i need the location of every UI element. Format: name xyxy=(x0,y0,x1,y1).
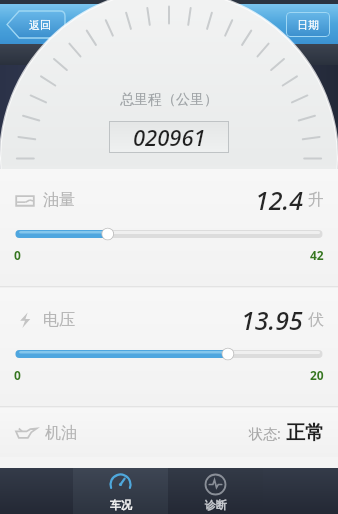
button[interactable]: 车况 xyxy=(73,468,168,514)
staticText: 伏 xyxy=(308,310,324,330)
staticText: 正常 xyxy=(286,421,324,445)
staticText: 20 xyxy=(310,367,324,383)
staticText: 车况 xyxy=(110,498,132,512)
staticText: 诊断 xyxy=(205,498,227,512)
staticText: 13.95 xyxy=(241,303,303,337)
staticText: 0 xyxy=(14,247,21,263)
staticText: 总里程（公里） xyxy=(120,91,218,109)
staticText: 返回 xyxy=(29,18,51,32)
staticText: 状态: xyxy=(249,424,281,443)
staticText: 42 xyxy=(310,247,324,263)
staticText: 电压 xyxy=(43,310,75,330)
staticText: 机油 xyxy=(45,423,77,443)
staticText: 0 xyxy=(14,367,21,383)
button[interactable]: 油量 xyxy=(0,169,338,286)
button[interactable]: 诊断 xyxy=(168,468,263,514)
staticText: 升 xyxy=(308,190,324,210)
staticText: 油量 xyxy=(43,190,75,210)
button[interactable]: 电压 xyxy=(0,289,338,406)
button[interactable]: 日期 xyxy=(286,12,330,37)
staticText: 12.4 xyxy=(255,183,303,217)
button[interactable]: 返回 xyxy=(7,11,65,38)
staticText: 车况 xyxy=(150,12,188,36)
staticText: 日期 xyxy=(297,18,319,32)
button[interactable]: 机油 xyxy=(0,409,338,457)
staticText: 020961 xyxy=(133,122,206,152)
